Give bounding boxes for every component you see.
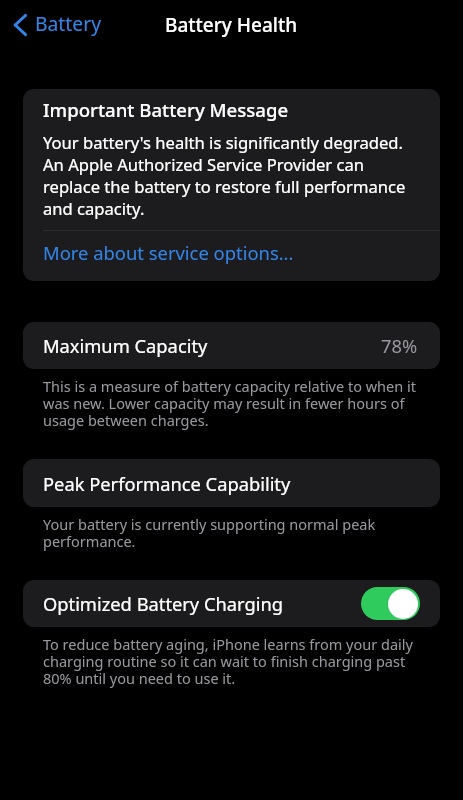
staticText: Your battery's health is significantly d… (43, 132, 406, 220)
button[interactable]: Battery (10, 7, 105, 43)
button[interactable]: Optimized Battery Charging (23, 580, 440, 627)
button[interactable]: More about service options... (23, 231, 440, 281)
staticText: Battery (35, 10, 101, 36)
staticText: To reduce battery aging, iPhone learns f… (43, 637, 413, 688)
button[interactable]: Peak Performance Capability (23, 459, 440, 507)
staticText: 78% (381, 333, 418, 358)
button[interactable]: Optimized Battery Charging toggle (361, 587, 420, 620)
staticText: Maximum Capacity (43, 333, 208, 358)
staticText: Battery Health (165, 12, 298, 38)
staticText: Your battery is currently supporting nor… (43, 517, 376, 551)
staticText: Optimized Battery Charging (43, 591, 284, 616)
staticText: More about service options... (43, 240, 294, 265)
staticText: Important Battery Message (43, 97, 289, 122)
staticText: Peak Performance Capability (43, 471, 291, 496)
staticText: This is a measure of battery capacity re… (43, 379, 416, 430)
button[interactable]: Maximum Capacity (23, 322, 440, 369)
